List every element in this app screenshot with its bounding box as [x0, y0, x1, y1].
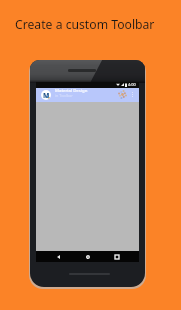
button[interactable]: Highlight	[117, 90, 127, 100]
staticText: M	[43, 91, 50, 100]
staticText: 4:00	[128, 82, 136, 87]
button[interactable]: App logo	[41, 90, 51, 100]
button[interactable]: More options	[128, 91, 137, 100]
button[interactable]: Home	[81, 251, 95, 262]
button[interactable]: Recents	[110, 251, 124, 262]
button[interactable]: Back	[51, 251, 65, 262]
staticText: Material Design	[55, 87, 88, 93]
staticText: in Toolbar	[55, 93, 73, 98]
staticText: Create a custom Toolbar	[15, 16, 155, 33]
